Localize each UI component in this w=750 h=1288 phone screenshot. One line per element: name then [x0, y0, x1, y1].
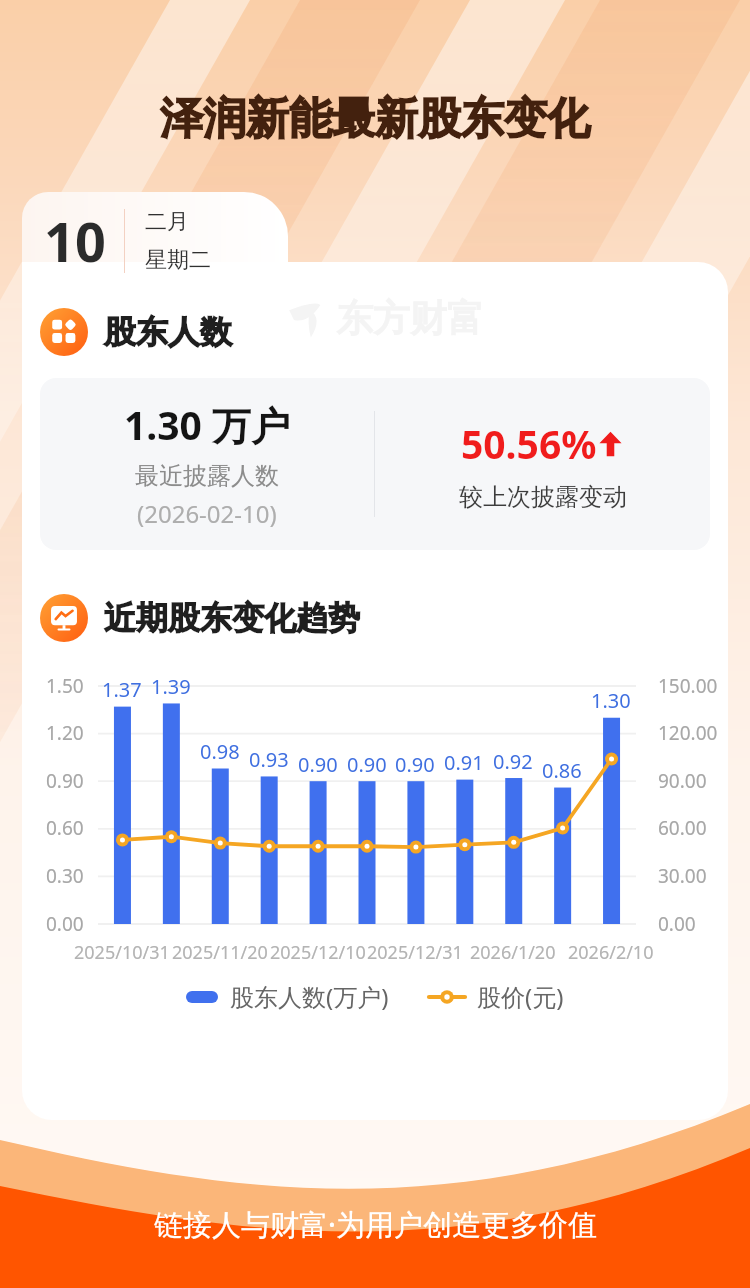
staticText: 1.30 万户: [124, 398, 291, 451]
staticText: 0.90: [347, 751, 387, 778]
staticText: 150.00: [658, 673, 718, 699]
staticText: 股东人数: [104, 312, 232, 352]
staticText: 0.00: [46, 911, 84, 937]
staticText: 泽润新能最新股东变化: [160, 92, 590, 146]
staticText: 近期股东变化趋势: [104, 598, 360, 638]
staticText: 0.92: [493, 748, 533, 775]
staticText: 最近披露人数: [135, 461, 279, 491]
staticText: (2026-02-10): [137, 497, 277, 530]
other: 近期股东变化趋势: [40, 594, 88, 642]
staticText: 1.20: [46, 720, 84, 746]
staticText: 1.50: [46, 673, 84, 699]
staticText: 链接人与财富·为用户创造更多价值: [154, 1204, 597, 1244]
staticText: 2026/2/10: [568, 940, 654, 965]
staticText: 2025/10/31: [74, 940, 170, 965]
staticText: 50.56%: [461, 417, 597, 470]
staticText: 0.98: [200, 738, 240, 765]
staticText: 0.60: [46, 815, 84, 841]
staticText: 0.90: [298, 751, 338, 778]
staticText: 股东人数(万户): [230, 980, 389, 1013]
button[interactable]: 股东人数: [22, 308, 728, 356]
staticText: 1.39: [151, 673, 191, 700]
staticText: 30.00: [658, 863, 707, 889]
staticText: 2025/12/10: [270, 940, 366, 965]
staticText: 0.90: [46, 768, 84, 794]
staticText: 10: [44, 204, 106, 278]
staticText: 0.91: [444, 749, 484, 776]
staticText: 较上次披露变动: [459, 482, 627, 512]
staticText: 1.30: [591, 687, 631, 714]
staticText: 股价(元): [477, 980, 564, 1013]
staticText: 2025/11/20: [172, 940, 268, 965]
staticText: 0.30: [46, 863, 84, 889]
staticText: 0.90: [395, 751, 435, 778]
staticText: 2025/12/31: [367, 940, 463, 965]
button[interactable]: 股东人数(万户): [182, 976, 393, 1017]
button[interactable]: 近期股东变化趋势: [22, 594, 728, 642]
staticText: 120.00: [658, 720, 718, 746]
staticText: 0.86: [542, 757, 582, 784]
staticText: 60.00: [658, 815, 707, 841]
staticText: 2026/1/20: [470, 940, 556, 965]
button[interactable]: 股价(元): [425, 976, 568, 1017]
staticText: 二月: [145, 208, 189, 236]
staticText: 星期二: [145, 246, 211, 274]
staticText: 0.00: [658, 911, 696, 937]
staticText: 0.93: [249, 746, 289, 773]
staticText: 东方财富: [336, 295, 484, 342]
other: 股东人数: [40, 308, 88, 356]
staticText: 1.37: [102, 676, 142, 703]
staticText: 90.00: [658, 768, 707, 794]
